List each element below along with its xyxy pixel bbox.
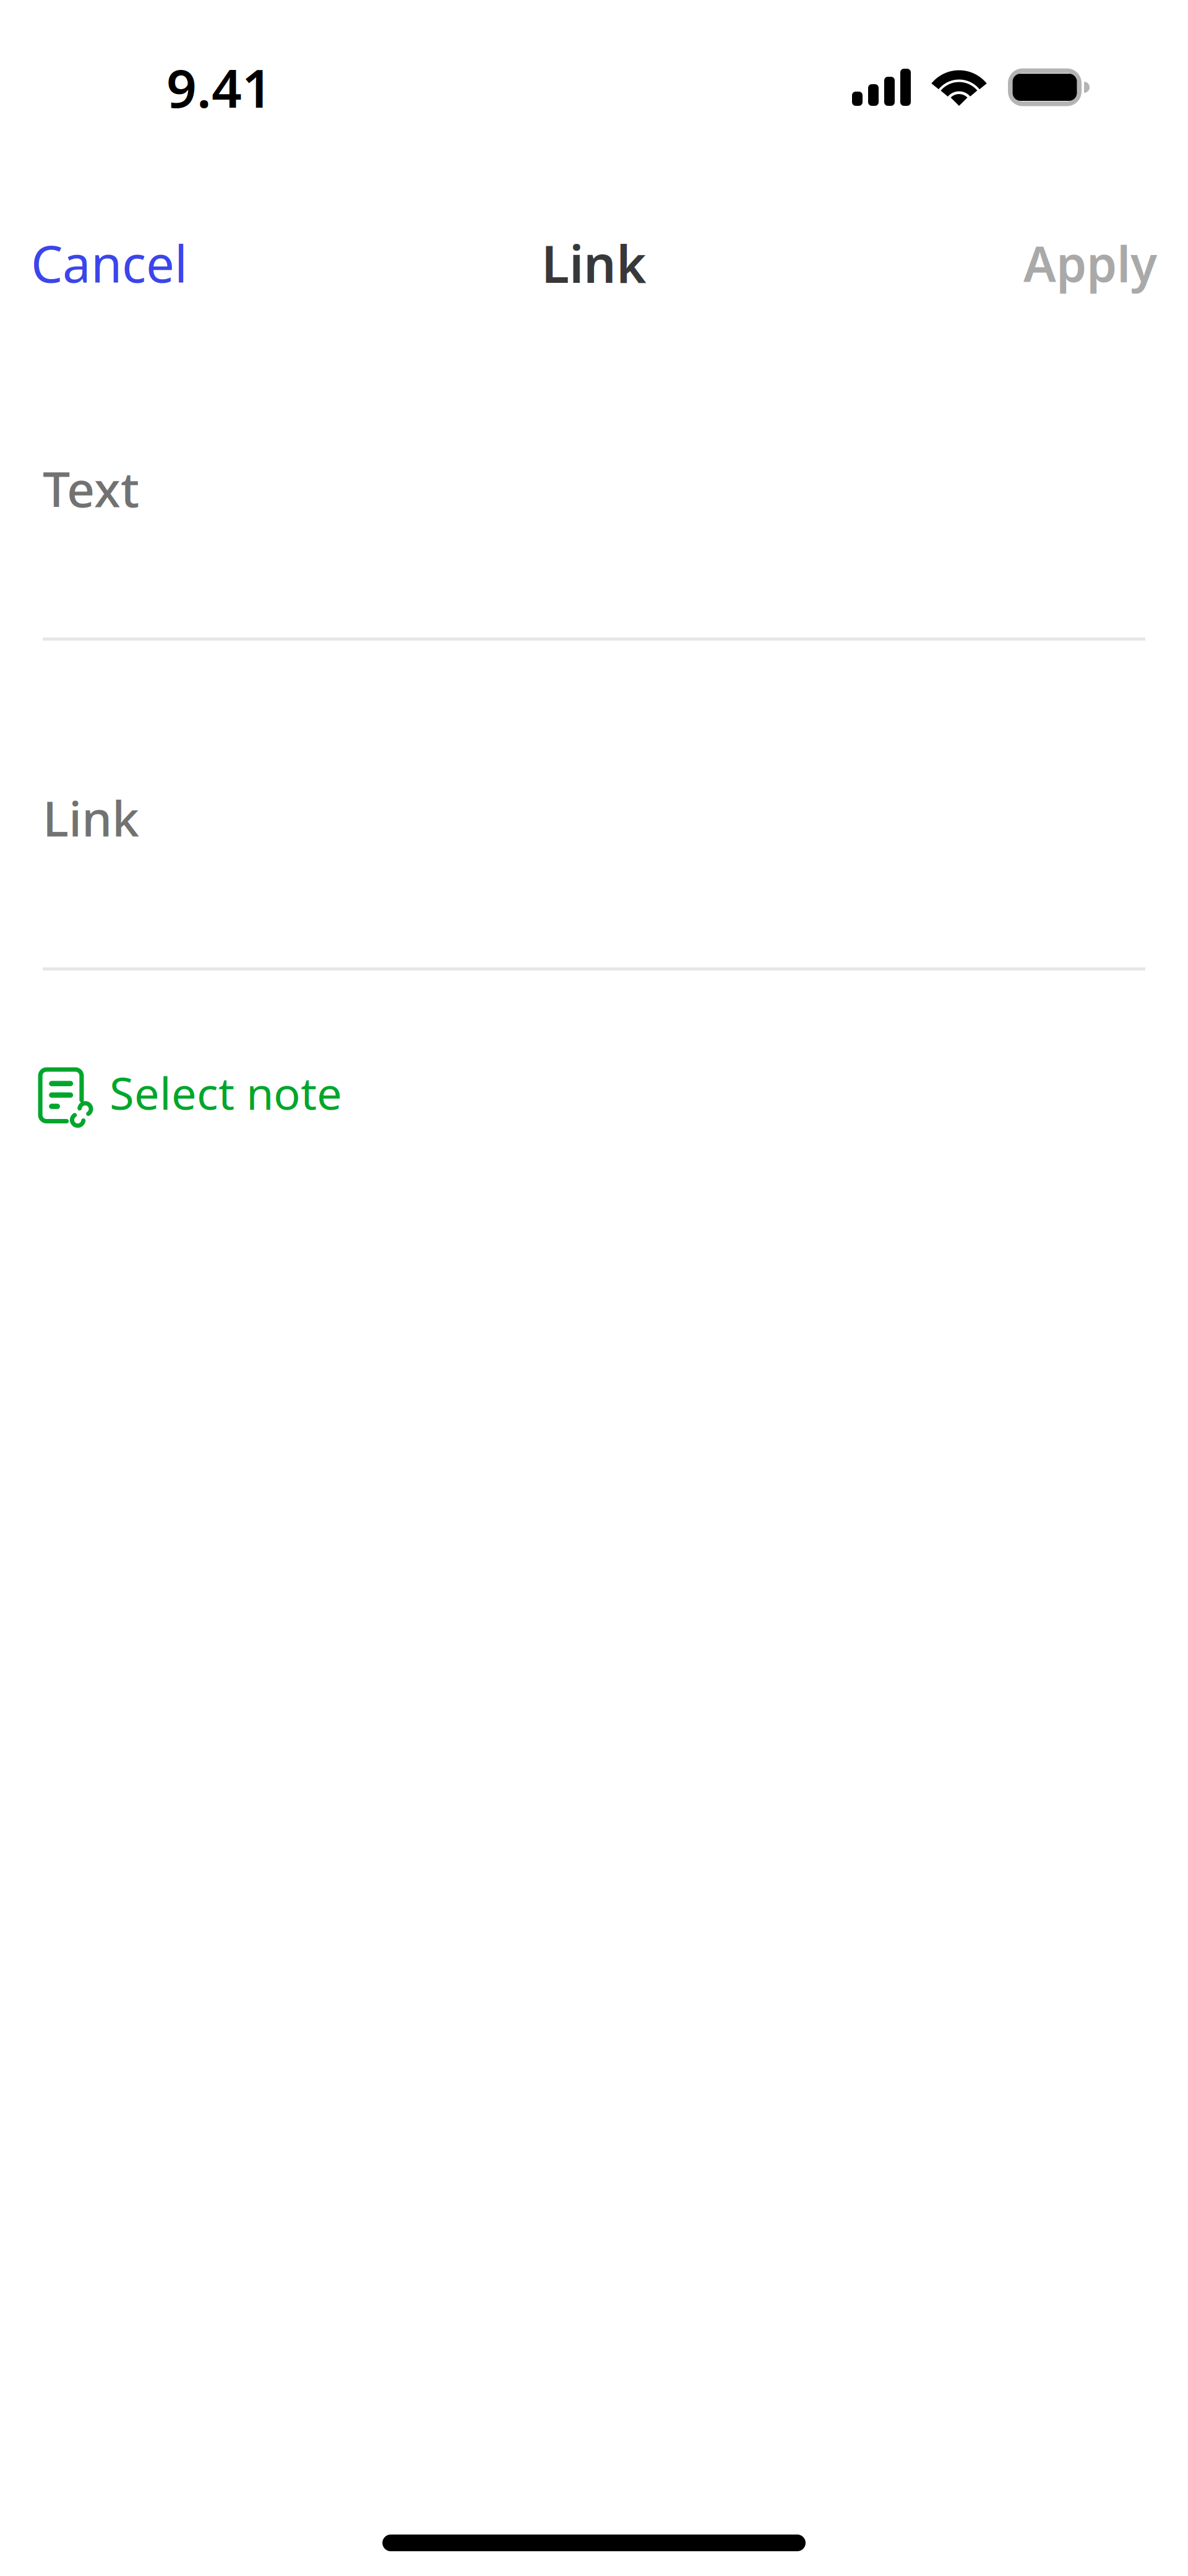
button[interactable]: Select note — [0, 1060, 1188, 1125]
button[interactable]: Link — [0, 641, 1188, 970]
staticText: Cancel — [31, 230, 187, 296]
button[interactable]: Cancel — [0, 216, 212, 310]
staticText: Apply — [1023, 231, 1157, 295]
staticText: 9.41 — [166, 52, 272, 122]
staticText: Text — [43, 456, 139, 521]
button[interactable]: Apply — [999, 217, 1188, 309]
staticText: Select note — [110, 1063, 342, 1122]
staticText: Link — [43, 785, 139, 850]
staticText: Link — [541, 229, 647, 297]
button[interactable]: Text — [0, 434, 1188, 641]
